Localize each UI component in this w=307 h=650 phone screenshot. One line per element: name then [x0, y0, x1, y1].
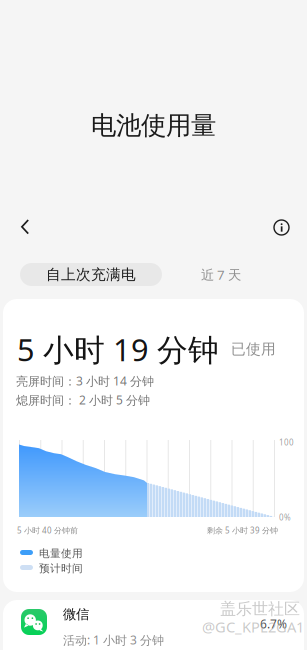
staticText: 盖乐世社区 [220, 599, 300, 619]
staticText: 电池使用量 [91, 110, 216, 141]
staticText: 5 小时 40 分钟前 [17, 525, 78, 536]
staticText: 近 7 天 [201, 266, 241, 283]
button[interactable]: Information [266, 212, 298, 244]
staticText: 0% [279, 512, 291, 523]
staticText: 自上次充满电 [46, 265, 136, 283]
staticText: 亮屏时间：3 小时 14 分钟 [16, 373, 154, 389]
staticText: 电量使用 [39, 547, 83, 560]
button[interactable]: 自上次充满电 [20, 263, 162, 286]
button[interactable]: Back [8, 210, 42, 244]
staticText: 熄屏时间： 2 小时 5 分钟 [16, 392, 150, 408]
staticText: 剩余 5 小时 39 分钟 [207, 525, 278, 536]
staticText: 100 [279, 437, 294, 448]
staticText: 预计时间 [39, 562, 83, 575]
staticText: @GC_KPL2GA1 [202, 617, 304, 636]
button[interactable]: 近 7 天 [178, 263, 264, 286]
staticText: 活动: 1 小时 3 分钟 [63, 632, 164, 648]
staticText: 微信 [63, 606, 89, 622]
staticText: 6.7% [260, 616, 287, 632]
button[interactable]: 微信 [3, 600, 304, 650]
staticText: 5 小时 19 分钟 [17, 329, 219, 370]
staticText: 已使用 [231, 340, 276, 358]
